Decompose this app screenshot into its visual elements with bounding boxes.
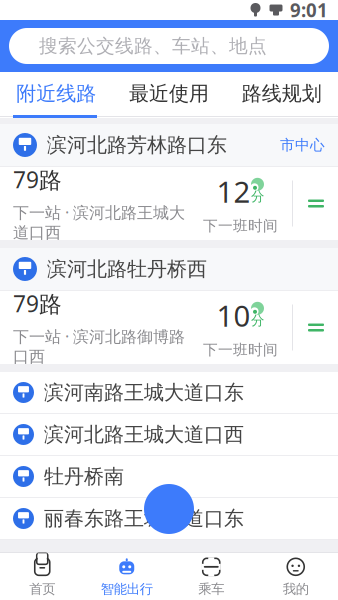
button[interactable]: 丽春东路王城大道口东 <box>0 498 338 540</box>
staticText: 附近线路 <box>16 81 96 106</box>
staticText: 下一班时间 <box>203 341 278 359</box>
staticText: 丽春东路王城大道口东 <box>44 506 244 531</box>
staticText: 下一站 · 滨河北路王城大道口西 <box>13 202 185 242</box>
staticText: 滨河北路芳林路口东 <box>47 133 227 157</box>
button[interactable]: 最近使用 <box>113 72 225 115</box>
button[interactable]: 牡丹桥南 <box>0 456 338 498</box>
staticText: 智能出行 <box>101 581 153 597</box>
staticText: 分 <box>251 188 264 205</box>
staticText: 搜索公交线路、车站、地点 <box>39 34 267 57</box>
staticText: 我的 <box>283 581 309 597</box>
staticText: 市中心 <box>280 136 325 154</box>
staticText: 牡丹桥南 <box>44 464 124 489</box>
button[interactable]: 智能出行 <box>84 553 169 600</box>
staticText: 滨河南路王城大道口东 <box>44 380 244 405</box>
staticText: 12 <box>216 172 250 211</box>
button[interactable]: 滨河北路芳林路口东 <box>0 124 338 240</box>
staticText: 路线规划 <box>242 81 322 106</box>
staticText: 下一班时间 <box>203 217 278 235</box>
button[interactable]: 路线规划 <box>225 72 338 115</box>
staticText: 10 <box>216 296 250 335</box>
staticText: 9:01 <box>290 0 328 22</box>
staticText: 滨河北路牡丹桥西 <box>47 257 207 281</box>
button[interactable]: 滨河北路牡丹桥西 <box>0 248 338 364</box>
staticText: 首页 <box>29 581 55 597</box>
staticText: 下一站 · 滨河北路御博路口西 <box>13 326 185 366</box>
staticText: 最近使用 <box>129 81 209 106</box>
button[interactable]: 定位 <box>144 484 194 534</box>
button[interactable]: 首页 <box>0 553 84 600</box>
button[interactable]: 我的 <box>253 553 338 600</box>
button[interactable]: 滨河南路王城大道口东 <box>0 372 338 414</box>
staticText: 79路 <box>13 288 62 319</box>
staticText: 滨河北路王城大道口西 <box>44 422 244 447</box>
button[interactable]: 附近线路 <box>0 72 113 115</box>
button[interactable]: 乘车 <box>169 553 253 600</box>
button[interactable]: 搜索公交线路、车站、地点 <box>0 28 338 64</box>
button[interactable]: 滨河北路王城大道口西 <box>0 414 338 456</box>
staticText: 分 <box>251 312 264 329</box>
staticText: 乘车 <box>198 581 224 597</box>
staticText: 79路 <box>13 164 62 195</box>
